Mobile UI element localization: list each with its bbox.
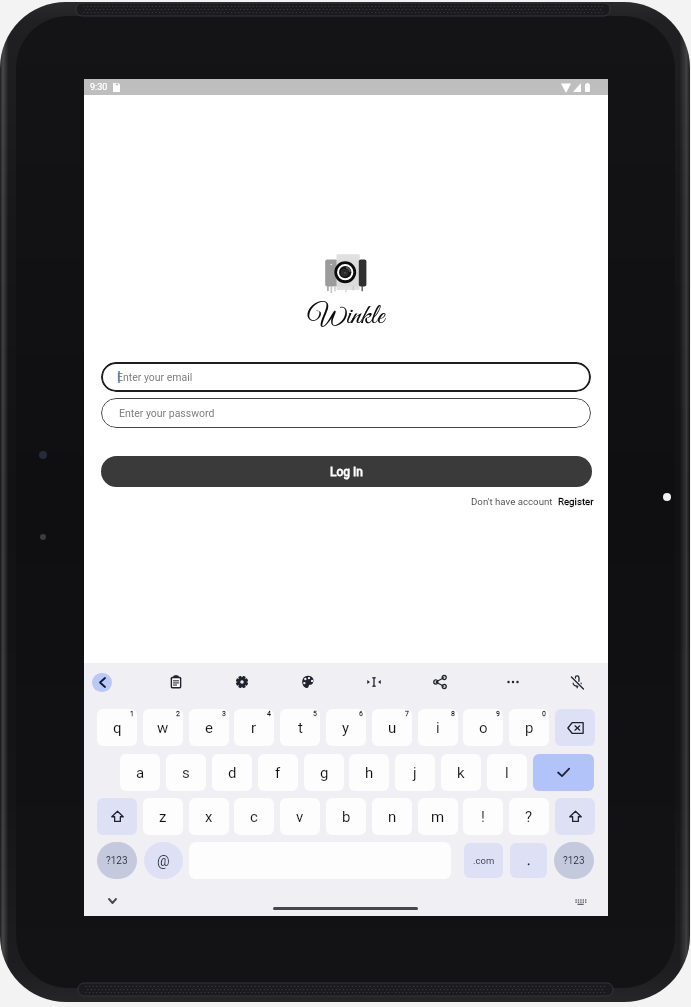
button[interactable]: v xyxy=(280,798,320,835)
staticText: p xyxy=(525,719,534,737)
button[interactable]: More options xyxy=(501,670,525,694)
button[interactable]: Microphone off xyxy=(565,670,589,694)
button[interactable]: t xyxy=(280,709,320,746)
staticText: 5 xyxy=(313,710,317,718)
staticText: e xyxy=(205,719,213,737)
staticText: Register xyxy=(558,496,594,507)
button[interactable]: Settings xyxy=(230,670,254,694)
button[interactable]: Clipboard xyxy=(164,670,188,694)
staticText: Don't have account xyxy=(471,496,553,507)
button[interactable]: Symbols xyxy=(554,842,594,879)
button[interactable]: g xyxy=(304,754,344,791)
staticText: o xyxy=(479,719,488,737)
staticText: s xyxy=(182,764,190,782)
button[interactable]: r xyxy=(234,709,274,746)
button[interactable]: Shift xyxy=(97,798,137,835)
button[interactable]: Back xyxy=(90,670,114,694)
staticText: 9 xyxy=(496,710,500,718)
button[interactable]: Backspace xyxy=(555,709,595,746)
button[interactable]: Log In xyxy=(101,456,592,487)
staticText: 7 xyxy=(405,710,409,718)
staticText: 6 xyxy=(359,710,363,718)
staticText: t xyxy=(298,719,303,737)
staticText: a xyxy=(136,764,145,782)
button[interactable]: Enter your email xyxy=(101,362,591,392)
button[interactable]: Enter your password xyxy=(101,398,591,428)
button[interactable]: Share xyxy=(428,670,452,694)
staticText: w xyxy=(157,719,169,737)
staticText: 9:30 xyxy=(90,82,108,93)
staticText: i xyxy=(436,719,440,737)
button[interactable]: f xyxy=(258,754,298,791)
staticText: . xyxy=(527,853,531,868)
button[interactable]: Theme xyxy=(296,670,320,694)
button[interactable]: p xyxy=(509,709,549,746)
staticText: n xyxy=(388,808,397,826)
staticText: Enter your email xyxy=(117,371,193,383)
staticText: f xyxy=(275,764,281,782)
staticText: 2 xyxy=(176,710,180,718)
button[interactable]: l xyxy=(487,754,527,791)
button[interactable]: u xyxy=(372,709,412,746)
staticText: h xyxy=(365,764,374,782)
staticText: @ xyxy=(157,853,170,869)
button[interactable]: q xyxy=(97,709,137,746)
button[interactable]: j xyxy=(395,754,435,791)
button[interactable]: Shift xyxy=(555,798,595,835)
button[interactable]: x xyxy=(189,798,229,835)
button[interactable]: h xyxy=(349,754,389,791)
button[interactable]: a xyxy=(120,754,160,791)
staticText: k xyxy=(457,764,465,782)
button[interactable]: y xyxy=(326,709,366,746)
button[interactable]: At sign xyxy=(144,842,183,879)
button[interactable]: Enter xyxy=(533,754,594,791)
button[interactable]: Register xyxy=(558,496,594,507)
button[interactable]: z xyxy=(143,798,183,835)
staticText: 4 xyxy=(267,710,271,718)
staticText: y xyxy=(342,719,350,737)
button[interactable]: e xyxy=(189,709,229,746)
button[interactable]: Symbols xyxy=(97,842,137,879)
button[interactable]: Hide keyboard xyxy=(100,889,124,913)
button[interactable]: b xyxy=(326,798,366,835)
staticText: z xyxy=(159,808,167,826)
staticText: 8 xyxy=(451,710,455,718)
staticText: c xyxy=(250,808,258,826)
staticText: l xyxy=(505,764,509,782)
button[interactable]: Text editing xyxy=(362,670,386,694)
button[interactable]: d xyxy=(212,754,252,791)
staticText: m xyxy=(431,808,445,826)
staticText: Enter your password xyxy=(119,407,215,419)
staticText: x xyxy=(205,808,213,826)
staticText: .com xyxy=(473,855,495,866)
staticText: q xyxy=(113,719,122,737)
button[interactable]: c xyxy=(234,798,274,835)
staticText: b xyxy=(342,808,351,826)
button[interactable]: s xyxy=(166,754,206,791)
staticText: g xyxy=(320,764,329,782)
button[interactable]: Keyboard layout xyxy=(568,890,592,914)
staticText: 0 xyxy=(542,710,546,718)
button[interactable]: ? xyxy=(509,798,549,835)
staticText: j xyxy=(413,764,417,782)
button[interactable]: .com xyxy=(464,843,503,878)
staticText: Log In xyxy=(330,465,363,479)
button[interactable]: Period xyxy=(510,843,547,878)
staticText: 3 xyxy=(222,710,226,718)
staticText: Winkle xyxy=(308,299,385,334)
staticText: ? xyxy=(525,808,533,826)
button[interactable]: o xyxy=(463,709,503,746)
staticText: ?123 xyxy=(106,855,128,867)
staticText: u xyxy=(388,719,397,737)
staticText: d xyxy=(228,764,237,782)
button[interactable]: w xyxy=(143,709,183,746)
button[interactable]: n xyxy=(372,798,412,835)
staticText: 1 xyxy=(130,710,134,718)
button[interactable]: ! xyxy=(463,798,503,835)
staticText: ! xyxy=(481,808,485,826)
button[interactable]: i xyxy=(418,709,458,746)
button[interactable]: m xyxy=(418,798,458,835)
button[interactable]: k xyxy=(441,754,481,791)
staticText: r xyxy=(251,719,257,737)
